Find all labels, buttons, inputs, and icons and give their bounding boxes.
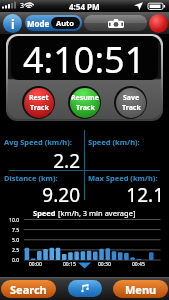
button[interactable]: Search — [1, 280, 56, 298]
staticText: 4:54 PM — [69, 1, 100, 12]
staticText — [88, 148, 164, 174]
staticText: Track — [122, 103, 141, 113]
staticText: Search — [10, 282, 47, 297]
staticText: 4:10:51 — [23, 36, 146, 79]
staticText: 12.1 — [88, 182, 164, 208]
button[interactable]: Record — [149, 14, 168, 33]
staticText: Track — [76, 103, 95, 113]
button[interactable]: Music — [68, 280, 102, 297]
staticText: 00:30 — [98, 261, 111, 268]
staticText: 7.5 — [0, 227, 19, 234]
staticText: Track — [30, 103, 49, 113]
staticText: 0.0 — [0, 257, 19, 264]
button[interactable]: Info — [3, 14, 22, 33]
button[interactable]: Menu — [113, 280, 168, 298]
button[interactable]: Resume — [68, 86, 101, 119]
staticText: i — [11, 16, 15, 32]
staticText: 00:45 — [132, 261, 145, 268]
button[interactable]: Save — [114, 86, 147, 119]
staticText: 3 — [20, 1, 25, 11]
button[interactable]: Reset — [22, 86, 55, 119]
staticText: 2.5 — [0, 247, 19, 254]
button[interactable]: Camera — [84, 15, 147, 31]
staticText: Auto — [56, 18, 75, 28]
button[interactable]: Mode — [25, 15, 82, 31]
staticText: 9.20 — [4, 182, 80, 208]
staticText: 00:00 — [29, 261, 42, 268]
staticText: Menu — [125, 282, 157, 297]
staticText: Avg Speed (km/h): — [4, 137, 72, 147]
staticText: 10.0 — [0, 217, 19, 224]
staticText: Speed (km/h): — [88, 137, 140, 147]
staticText: 2.2 — [4, 148, 80, 174]
staticText: Distance (km): — [4, 173, 58, 183]
staticText: 5.0 — [0, 237, 19, 244]
staticText: 00:15 — [63, 261, 76, 268]
staticText: Save — [123, 93, 140, 103]
staticText: Max Speed (km/h): — [88, 173, 158, 183]
staticText: [km/h, 3 min average] — [58, 208, 136, 218]
staticText: Reset — [29, 93, 49, 103]
staticText: Mode — [27, 18, 50, 29]
staticText: Resume — [71, 93, 99, 103]
staticText: Speed — [33, 208, 58, 218]
